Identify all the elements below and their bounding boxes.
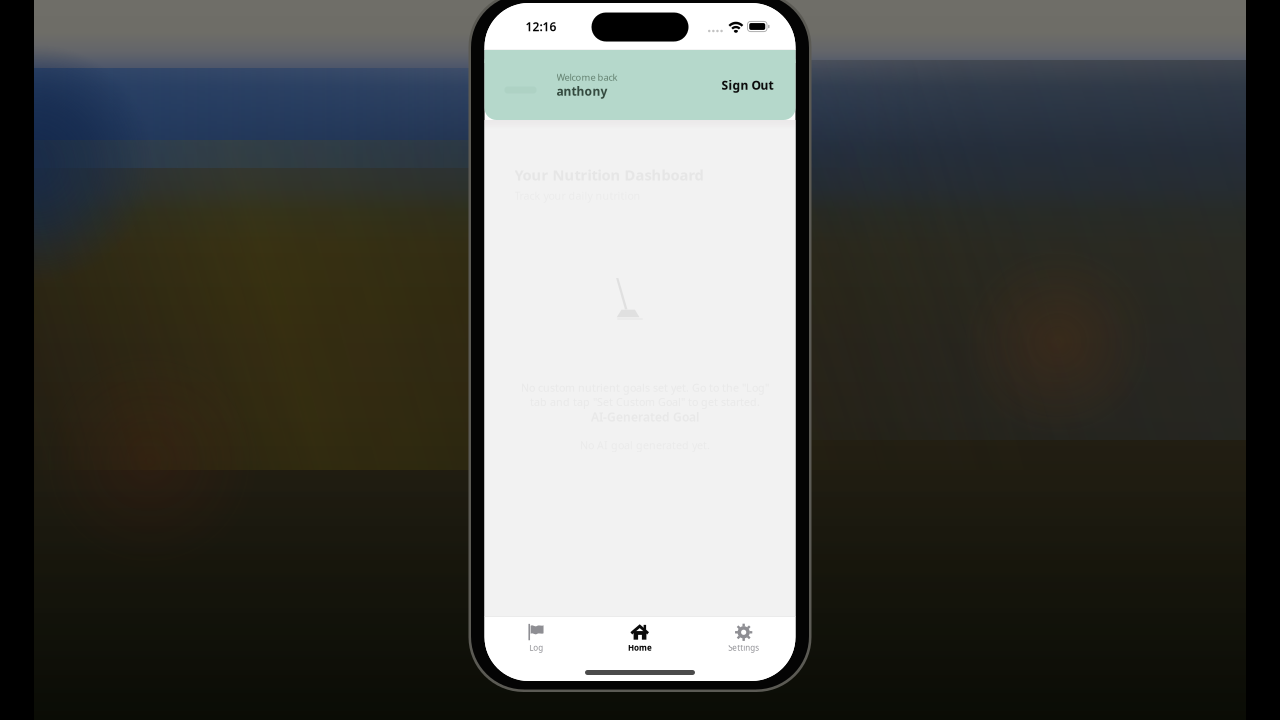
staticText: Settings	[728, 642, 759, 653]
button[interactable]: Sign Out	[721, 77, 773, 93]
button[interactable]: Home	[588, 619, 692, 656]
staticText: AI-Generated Goal	[591, 409, 699, 425]
staticText: 12:16	[525, 18, 556, 34]
button[interactable]: Log	[484, 619, 588, 656]
staticText: Your Nutrition Dashboard	[514, 165, 703, 184]
staticText: Home	[628, 642, 652, 653]
button[interactable]: Settings	[692, 619, 795, 656]
staticText: Welcome back	[556, 71, 617, 83]
staticText: anthony	[556, 83, 607, 99]
staticText: Sign Out	[721, 77, 773, 93]
staticText: Log	[529, 642, 543, 653]
